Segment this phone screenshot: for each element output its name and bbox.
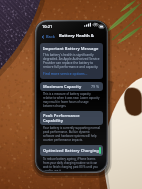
staticText: To reduce battery ageing, iPhone learns … xyxy=(43,157,100,171)
button[interactable]: Important Battery Message xyxy=(40,43,103,79)
button[interactable]: Back xyxy=(40,33,57,40)
staticText: Optimized Battery Charging xyxy=(43,148,99,153)
staticText: This battery's health is significantly d… xyxy=(43,53,100,69)
button[interactable]: Optimized Battery Charging toggle, on xyxy=(99,147,101,154)
staticText: Your battery is currently supporting nor… xyxy=(43,126,100,142)
staticText: Maximum Capacity xyxy=(43,84,82,89)
button[interactable]: Peak Performance Capability xyxy=(40,111,103,125)
staticText: This is a measure of battery capacity re… xyxy=(43,92,100,108)
staticText: Peak Performance Capability xyxy=(43,113,100,123)
staticText: Important Battery Message xyxy=(43,46,99,51)
button[interactable]: Optimized Battery Charging xyxy=(40,145,103,156)
staticText: Back xyxy=(46,34,56,39)
staticText: 79 % xyxy=(91,84,100,89)
button[interactable]: Maximum Capacity xyxy=(40,82,103,91)
button[interactable]: Find more service options... xyxy=(43,71,88,76)
staticText: Battery Health & Charging xyxy=(59,33,103,39)
staticText: 10:21 xyxy=(42,24,53,29)
